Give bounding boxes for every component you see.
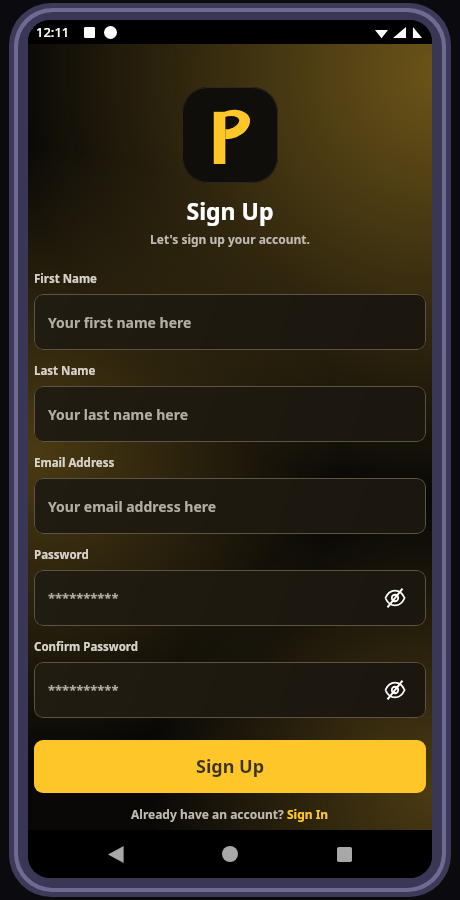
- button[interactable]: Show password: [378, 581, 412, 615]
- staticText: Confirm Password: [34, 639, 139, 655]
- staticText: Already have an account?: [131, 806, 287, 822]
- staticText: Last Name: [34, 363, 96, 379]
- staticText: Your last name here: [48, 405, 189, 424]
- staticText: Sign Up: [196, 754, 265, 779]
- staticText: Your first name here: [48, 313, 192, 332]
- button[interactable]: Your email address here: [34, 478, 426, 534]
- button[interactable]: Recents: [326, 836, 362, 872]
- staticText: 12:11: [36, 23, 70, 41]
- staticText: **********: [48, 681, 119, 699]
- staticText: Sign In: [287, 806, 329, 822]
- staticText: Password: [34, 547, 89, 563]
- button[interactable]: Show password: [378, 673, 412, 707]
- button[interactable]: Home: [212, 836, 248, 872]
- button[interactable]: **********: [34, 662, 426, 718]
- staticText: First Name: [34, 271, 97, 287]
- button[interactable]: Already have an account?: [34, 806, 426, 822]
- staticText: **********: [48, 589, 119, 607]
- staticText: Sign Up: [34, 195, 426, 226]
- staticText: Your email address here: [48, 497, 217, 516]
- staticText: Email Address: [34, 455, 115, 471]
- button[interactable]: Your first name here: [34, 294, 426, 350]
- button[interactable]: Your last name here: [34, 386, 426, 442]
- button[interactable]: **********: [34, 570, 426, 626]
- button[interactable]: Back: [98, 836, 134, 872]
- button[interactable]: Sign Up: [34, 740, 426, 793]
- staticText: Let's sign up your account.: [34, 231, 426, 247]
